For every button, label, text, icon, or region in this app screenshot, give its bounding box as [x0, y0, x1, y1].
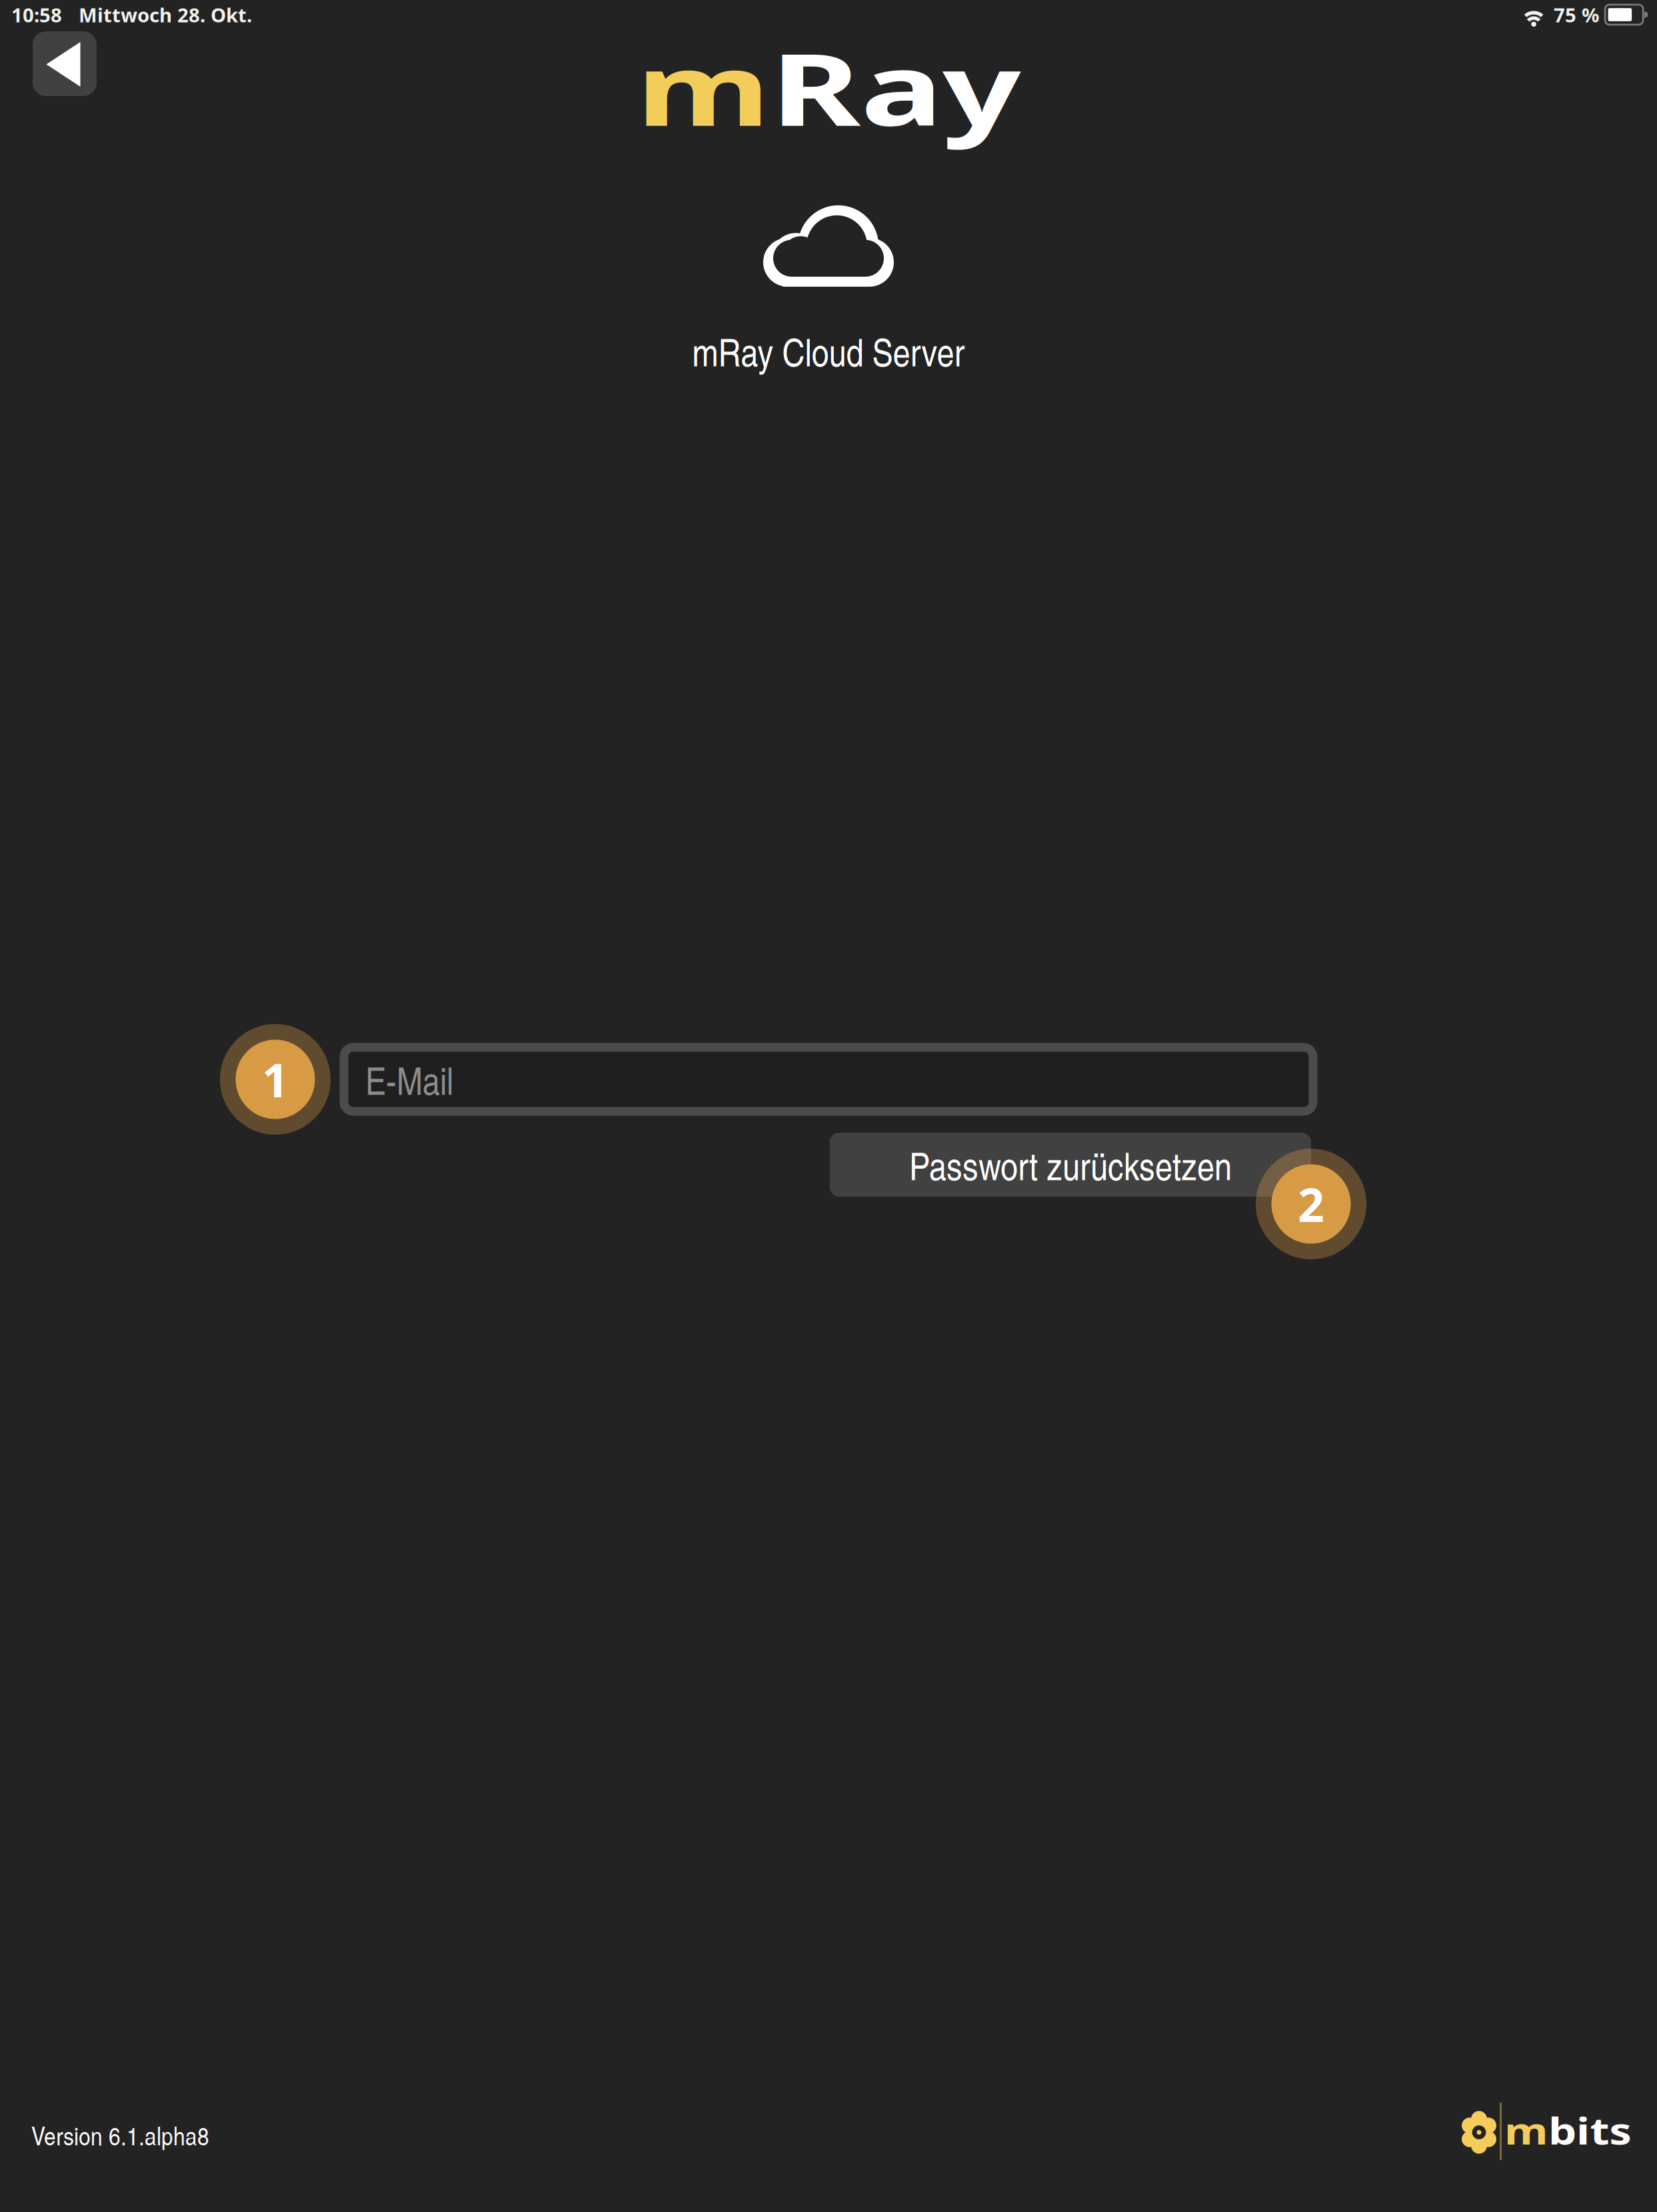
button[interactable]: Passwort zurücksetzen	[830, 1133, 1311, 1197]
staticText: m	[689, 19, 787, 155]
staticText: Version 6.1.alpha8	[31, 2117, 209, 2153]
staticText: mRay Cloud Server	[692, 325, 965, 377]
staticText: bits	[1552, 2105, 1621, 2156]
staticText: 2	[1298, 1172, 1324, 1236]
staticText: E-Mail	[365, 1053, 453, 1106]
staticText: 10:58	[11, 1, 62, 28]
staticText: Mittwoch 28. Okt.	[79, 1, 252, 28]
staticText: Ray	[787, 19, 968, 155]
staticText: 75 %	[1554, 1, 1599, 28]
button[interactable]: Zurück	[33, 31, 97, 96]
staticText: 1	[262, 1048, 289, 1111]
staticText: m	[1515, 2105, 1552, 2156]
staticText: Passwort zurücksetzen	[909, 1138, 1232, 1191]
